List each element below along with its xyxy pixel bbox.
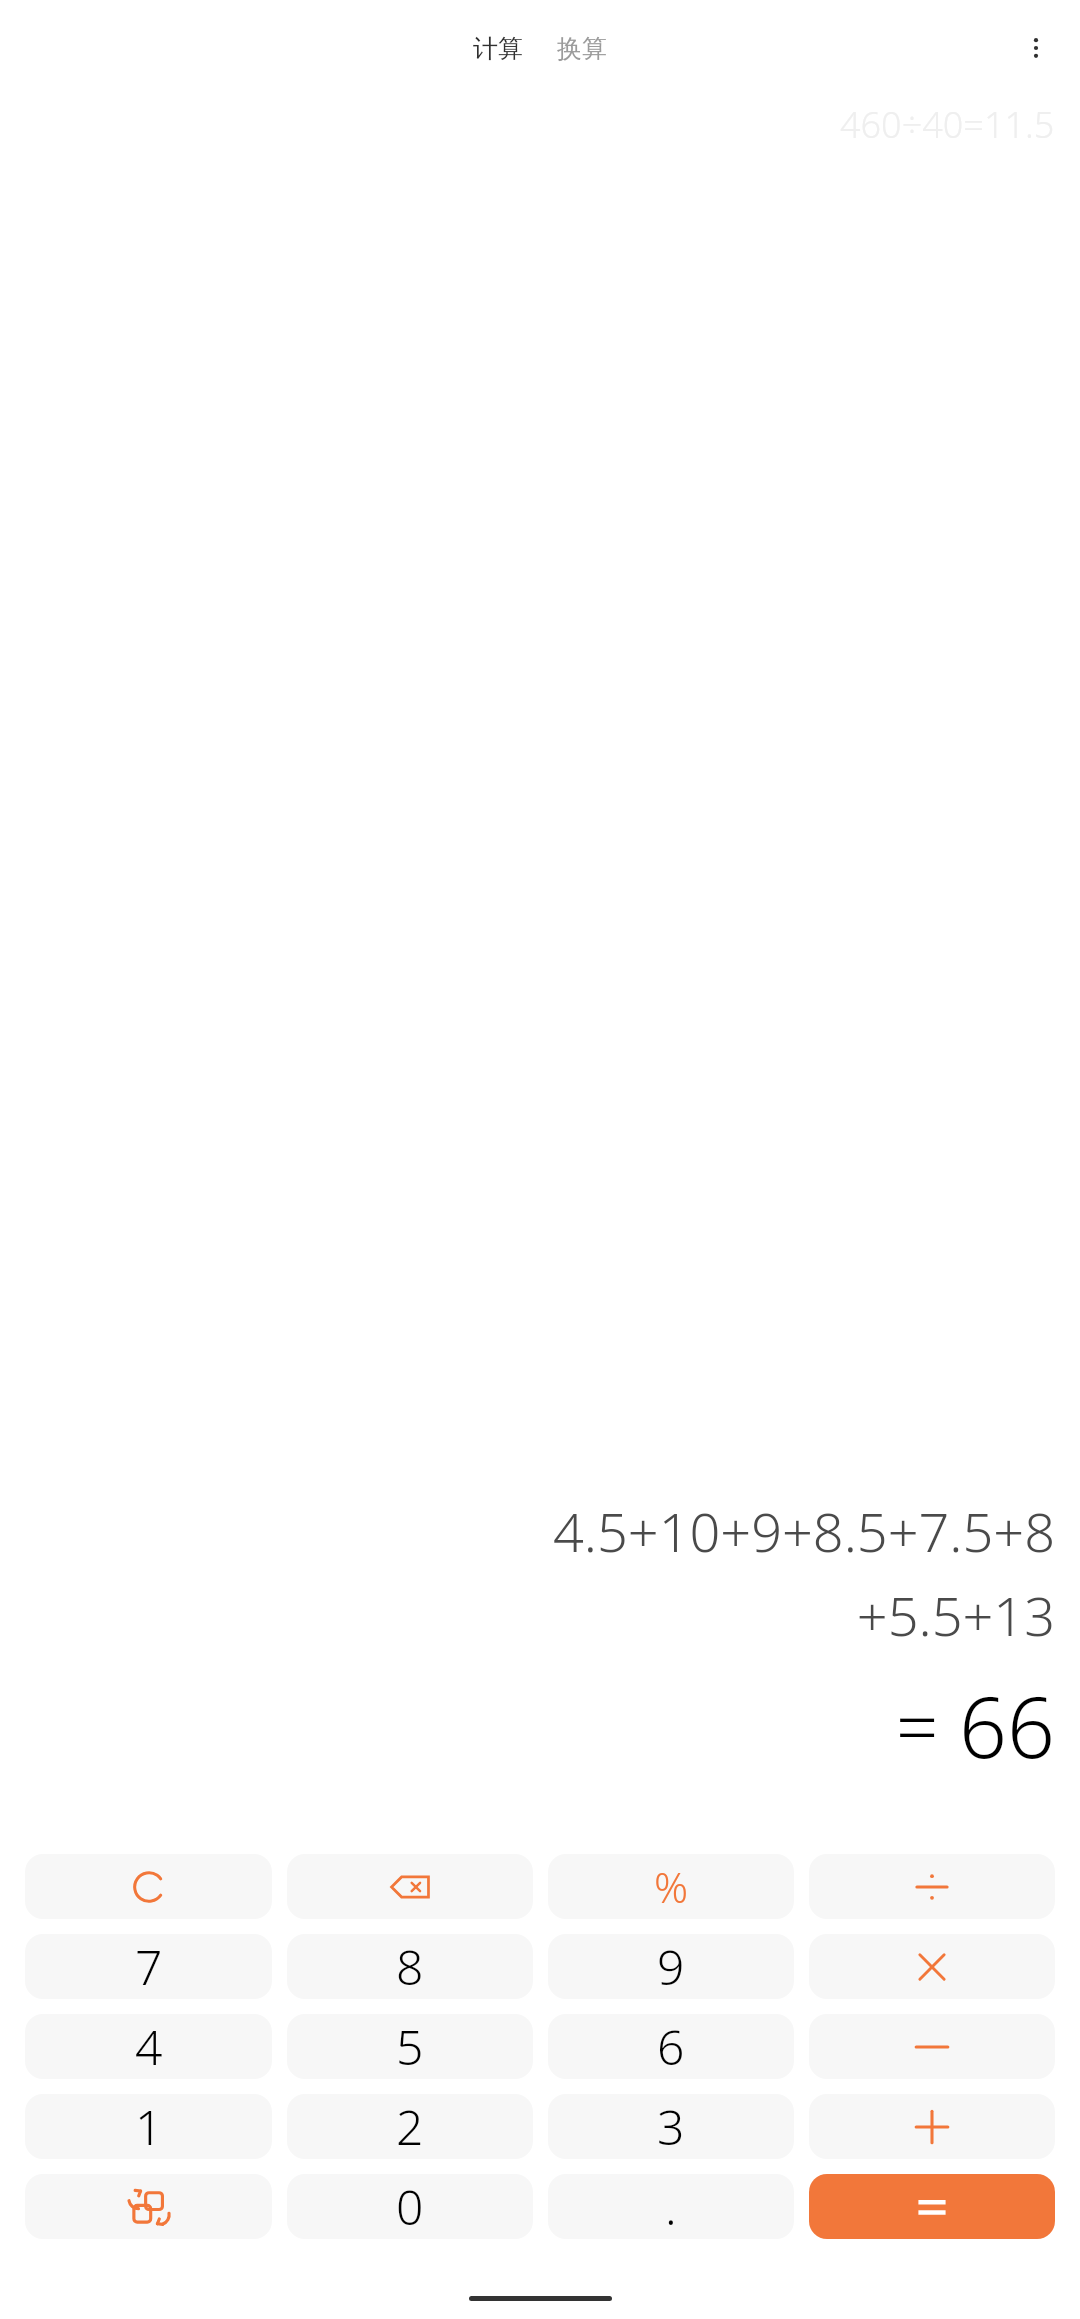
button[interactable]: 4 (25, 2014, 272, 2079)
staticText: 3 (657, 2094, 685, 2159)
staticText: 4.5+10+9+8.5+7.5+8 +5.5+13 (28, 1494, 1055, 1652)
other: Clear (25, 1854, 272, 1919)
staticText: . (665, 2174, 677, 2239)
staticText: 460÷40=11.5 (840, 100, 1055, 149)
staticText: 换算 (557, 33, 607, 64)
staticText: 8 (396, 1934, 424, 1999)
staticText: 9 (657, 1934, 685, 1999)
button[interactable]: 9 (548, 1934, 794, 1999)
button[interactable]: Minus (809, 2014, 1055, 2079)
staticText: 66 (959, 1668, 1055, 1782)
staticText: % (654, 1858, 689, 1915)
button[interactable]: 5 (287, 2014, 533, 2079)
button[interactable]: 3 (548, 2094, 794, 2159)
button[interactable]: 7 (25, 1934, 272, 1999)
other: Convert (25, 2174, 272, 2239)
button[interactable]: Clear (25, 1854, 272, 1919)
button[interactable]: 0 (287, 2174, 533, 2239)
other: Minus (809, 2014, 1055, 2079)
staticText: = (896, 1675, 939, 1776)
button[interactable]: 8 (287, 1934, 533, 1999)
button[interactable]: Plus (809, 2094, 1055, 2159)
other: Multiply (809, 1934, 1055, 1999)
button[interactable]: Divide (809, 1854, 1055, 1919)
button[interactable]: 换算 (551, 29, 613, 68)
button[interactable]: . (548, 2174, 794, 2239)
staticText: 6 (657, 2014, 685, 2079)
staticText: 7 (135, 1934, 163, 1999)
staticText: 5 (396, 2014, 424, 2079)
button[interactable]: 2 (287, 2094, 533, 2159)
staticText: 计算 (473, 33, 523, 64)
button[interactable]: % (548, 1854, 794, 1919)
staticText: 0 (396, 2174, 424, 2239)
button[interactable]: 1 (25, 2094, 272, 2159)
staticText: 4 (135, 2014, 163, 2079)
button[interactable]: More options (1008, 20, 1064, 76)
staticText: 1 (135, 2094, 163, 2159)
other: Backspace (287, 1854, 533, 1919)
button[interactable]: 6 (548, 2014, 794, 2079)
button[interactable]: Multiply (809, 1934, 1055, 1999)
button[interactable]: Convert (25, 2174, 272, 2239)
button[interactable]: Equals (809, 2174, 1055, 2239)
staticText: 2 (396, 2094, 424, 2159)
button[interactable]: 计算 (467, 29, 529, 68)
button[interactable]: Backspace (287, 1854, 533, 1919)
other: Plus (809, 2094, 1055, 2159)
other: Divide (809, 1854, 1055, 1919)
